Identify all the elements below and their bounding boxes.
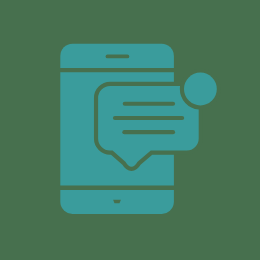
button[interactable]: Mobile chat message illustration [0, 0, 260, 260]
